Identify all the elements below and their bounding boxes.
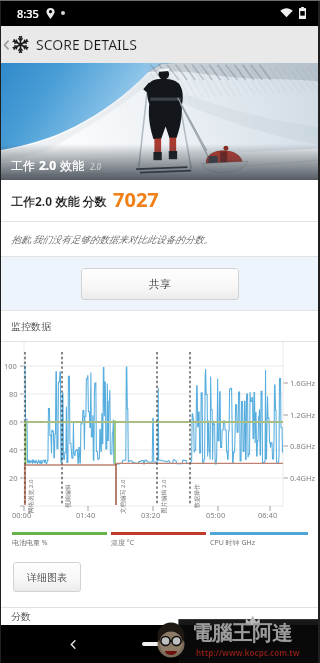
- staticText: 03:20: [141, 510, 161, 520]
- staticText: 温度 °C: [111, 538, 135, 548]
- button[interactable]: Back: [0, 26, 12, 63]
- staticText: http://www.kocpc.com.tw: [196, 647, 300, 658]
- staticText: 电池电量 %: [12, 538, 48, 548]
- staticText: 0.8GHz: [290, 441, 316, 451]
- staticText: 监控数据: [11, 320, 51, 333]
- staticText: 20: [9, 473, 18, 483]
- staticText: CPU 时钟 GHz: [210, 538, 255, 548]
- staticText: 7027: [113, 186, 159, 213]
- staticText: 图片编辑 2.0: [159, 478, 167, 513]
- staticText: 2.0: [90, 161, 101, 172]
- staticText: 效能: [57, 157, 85, 173]
- staticText: SCORE DETAILS: [36, 35, 137, 54]
- button[interactable]: 共享: [81, 268, 239, 300]
- staticText: 1.6GHz: [290, 378, 316, 388]
- staticText: 05:00: [206, 510, 226, 520]
- staticText: 详细图表: [27, 571, 67, 584]
- staticText: 视频编辑: [64, 484, 72, 508]
- staticText: 100: [4, 361, 17, 371]
- staticText: 共享: [149, 277, 171, 291]
- staticText: 1.2GHz: [290, 410, 316, 420]
- button[interactable]: Home: [142, 642, 178, 646]
- button[interactable]: 详细图表: [13, 562, 81, 592]
- staticText: 0.4GHz: [290, 473, 316, 483]
- staticText: 60: [9, 417, 18, 427]
- button[interactable]: Back: [62, 625, 84, 663]
- staticText: 8:35: [17, 6, 39, 21]
- staticText: 80: [9, 389, 18, 399]
- staticText: 01:40: [76, 510, 96, 520]
- staticText: 40: [9, 445, 18, 455]
- staticText: 工作: [11, 157, 39, 173]
- staticText: 数据操作: [193, 484, 201, 508]
- staticText: 分数: [11, 610, 31, 623]
- staticText: 网络浏览 2.0: [26, 478, 34, 513]
- staticText: 文档编写 2.0: [118, 478, 126, 513]
- staticText: 抱歉,我们没有足够的数据来对比此设备的分数。: [11, 233, 213, 246]
- staticText: 電腦王阿達: [192, 621, 292, 646]
- staticText: 00:00: [12, 510, 32, 520]
- staticText: 06:40: [258, 510, 278, 520]
- staticText: 工作2.0 效能 分数: [11, 193, 107, 209]
- staticText: 2.0: [39, 157, 57, 173]
